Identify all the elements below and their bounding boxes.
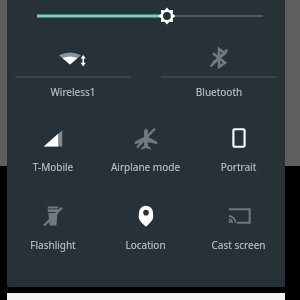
button[interactable]: Bluetooth xyxy=(153,42,285,99)
button[interactable]: T-Mobile xyxy=(7,122,99,174)
button[interactable]: Airplane mode xyxy=(99,122,192,174)
staticText: Flashlight xyxy=(7,238,99,252)
button[interactable]: Brightness xyxy=(7,0,285,38)
staticText: Location xyxy=(99,238,192,252)
button[interactable]: Cast screen xyxy=(192,200,285,252)
button[interactable]: Portrait xyxy=(192,122,285,174)
button[interactable]: Flashlight xyxy=(7,200,99,252)
staticText: Bluetooth xyxy=(153,85,285,99)
staticText: Wireless1 xyxy=(7,85,139,99)
staticText: T-Mobile xyxy=(7,160,99,174)
staticText: Airplane mode xyxy=(99,160,192,174)
staticText: Portrait xyxy=(192,160,285,174)
staticText: Cast screen xyxy=(192,238,285,252)
button[interactable]: Wireless1 xyxy=(7,42,139,99)
button[interactable]: Location xyxy=(99,200,192,252)
